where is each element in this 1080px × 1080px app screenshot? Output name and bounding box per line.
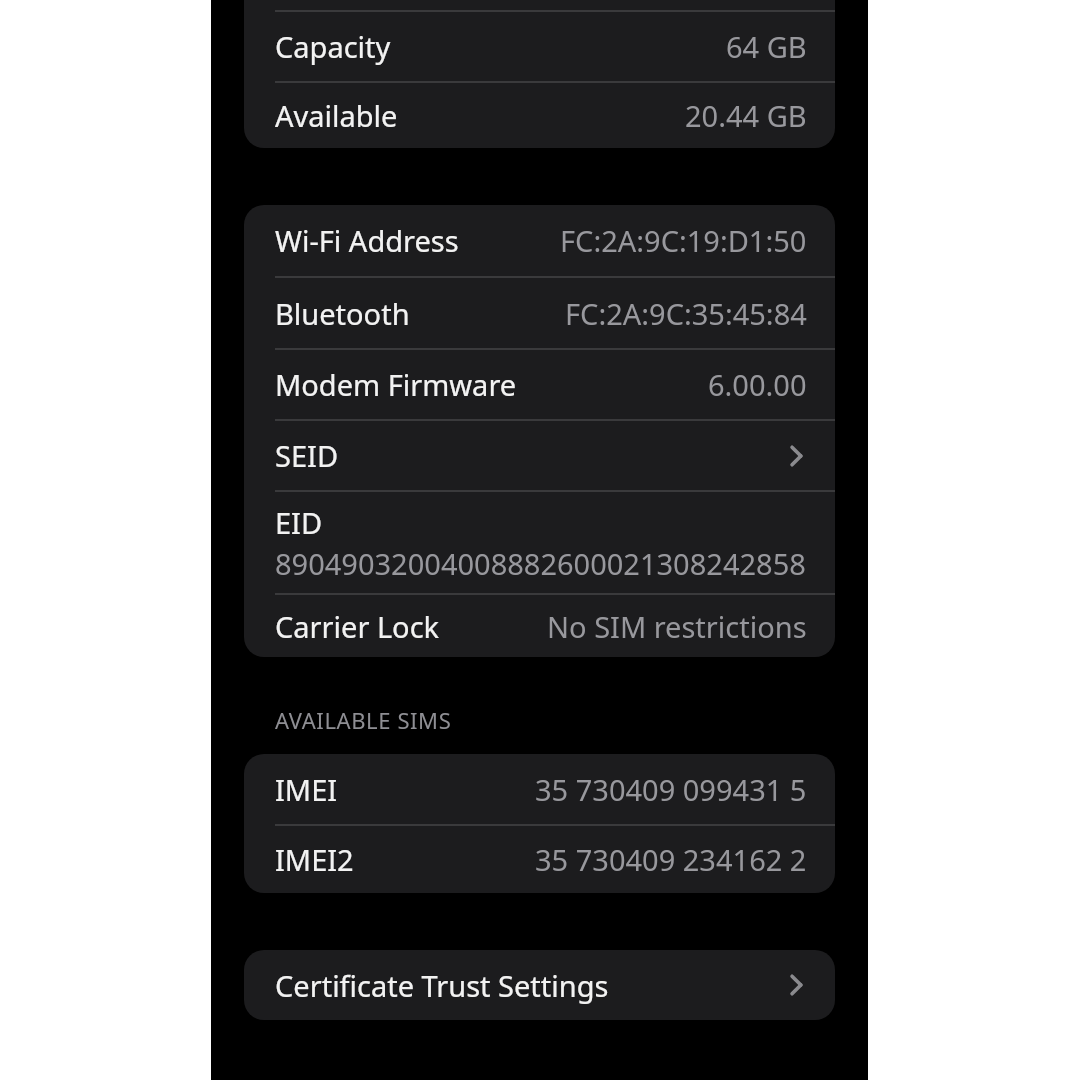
staticText: IMEI <box>275 770 338 809</box>
button[interactable]: Modem Firmware <box>244 350 835 419</box>
other: Open Certificate Trust Settings <box>785 968 807 1002</box>
staticText: 35 730409 234162 2 <box>535 840 807 879</box>
button[interactable]: IMEI2 <box>244 826 835 893</box>
staticText: 6.00.00 <box>708 365 807 404</box>
staticText: No SIM restrictions <box>547 607 807 646</box>
button[interactable]: Capacity <box>244 12 835 81</box>
staticText: Available <box>275 96 398 135</box>
staticText: FC:2A:9C:35:45:84 <box>565 294 807 333</box>
button[interactable]: Carrier Lock <box>244 595 835 657</box>
staticText: Carrier Lock <box>275 607 440 646</box>
staticText: EID <box>275 503 323 542</box>
staticText: 20.44 GB <box>685 96 807 135</box>
button[interactable]: IMEI <box>244 754 835 824</box>
button[interactable]: Bluetooth <box>244 278 835 348</box>
staticText: Capacity <box>275 27 391 66</box>
button[interactable]: EID <box>244 492 835 593</box>
staticText: Modem Firmware <box>275 365 517 404</box>
button[interactable]: Wi-Fi Address <box>244 205 835 276</box>
staticText: Bluetooth <box>275 294 410 333</box>
other: Open SEID <box>785 439 807 473</box>
staticText: Certificate Trust Settings <box>275 966 609 1005</box>
staticText: 64 GB <box>726 27 807 66</box>
button[interactable]: SEID <box>244 421 835 490</box>
button[interactable]: Available <box>244 83 835 148</box>
staticText: AVAILABLE SIMS <box>275 705 452 735</box>
staticText: SEID <box>275 436 339 475</box>
staticText: 35 730409 099431 5 <box>535 770 807 809</box>
staticText: Wi-Fi Address <box>275 221 459 260</box>
button[interactable]: Certificate Trust Settings <box>244 950 835 1020</box>
staticText: IMEI2 <box>275 840 354 879</box>
staticText: FC:2A:9C:19:D1:50 <box>560 221 807 260</box>
staticText: 89049032004008882600021308242858 <box>275 544 806 583</box>
